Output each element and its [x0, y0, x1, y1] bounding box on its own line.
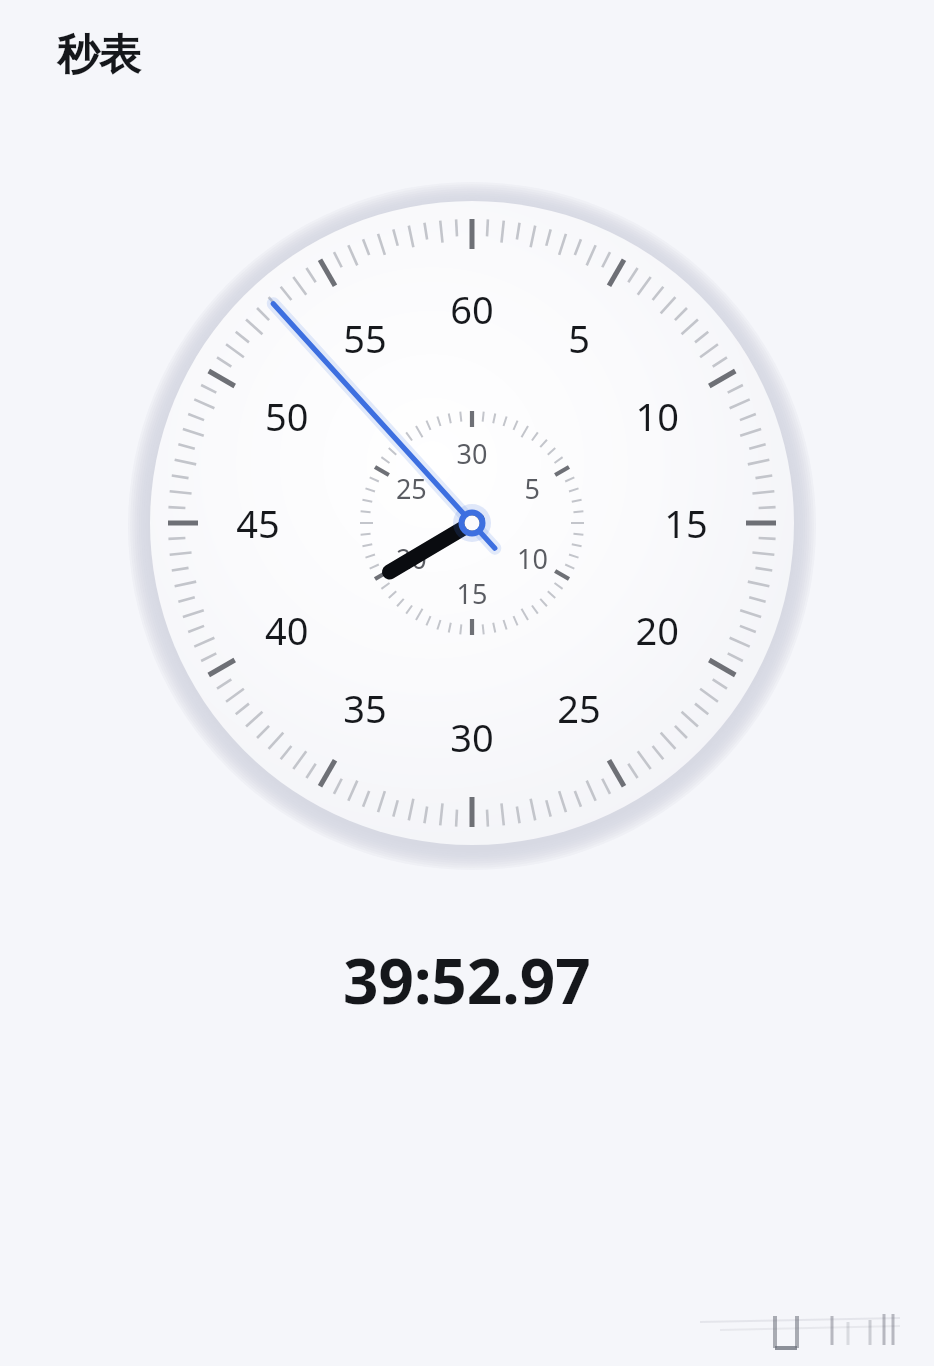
- staticText: 秒表: [57, 29, 141, 82]
- button[interactable]: Stopwatch dial: [0, 110, 934, 910]
- button[interactable]: 秒表: [0, 0, 934, 110]
- button[interactable]: 39:52.97: [0, 910, 934, 1050]
- staticText: 39:52.97: [343, 938, 591, 1022]
